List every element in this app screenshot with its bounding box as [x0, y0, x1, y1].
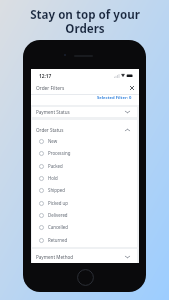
button[interactable]: Hold — [32, 172, 137, 184]
staticText: Payment Method — [36, 254, 74, 260]
staticText: Cancelled — [48, 224, 68, 230]
staticText: Payment Status — [36, 109, 70, 115]
button[interactable]: Payment Method — [32, 251, 137, 262]
staticText: Order Filters — [36, 85, 65, 92]
staticText: Hold — [48, 175, 58, 181]
staticText: Packed — [48, 163, 63, 169]
staticText: Selected Filter: 0 — [97, 95, 132, 101]
button[interactable]: Order Status — [32, 124, 137, 135]
button[interactable]: Returned — [32, 234, 137, 246]
staticText: New — [48, 138, 58, 144]
staticText: Processing — [48, 150, 71, 156]
staticText: Delivered — [48, 212, 68, 218]
button[interactable]: New — [32, 135, 137, 147]
staticText: Picked up — [48, 200, 68, 206]
button[interactable]: Delivered — [32, 209, 137, 221]
button[interactable]: Packed — [32, 160, 137, 172]
staticText: Order Status — [36, 127, 64, 133]
button[interactable]: Cancelled — [32, 221, 137, 233]
button[interactable]: Processing — [32, 147, 137, 159]
staticText: Stay on top of your Orders — [30, 7, 140, 36]
staticText: Returned — [48, 237, 68, 243]
button[interactable]: Picked up — [32, 197, 137, 209]
button[interactable]: Close filters — [127, 83, 136, 92]
staticText: Shipped — [48, 187, 65, 193]
staticText: 12:17 — [39, 73, 52, 80]
button[interactable]: Shipped — [32, 184, 137, 196]
button[interactable]: Payment Status — [32, 107, 137, 117]
button[interactable]: Selected Filter: 0 — [31, 95, 139, 101]
